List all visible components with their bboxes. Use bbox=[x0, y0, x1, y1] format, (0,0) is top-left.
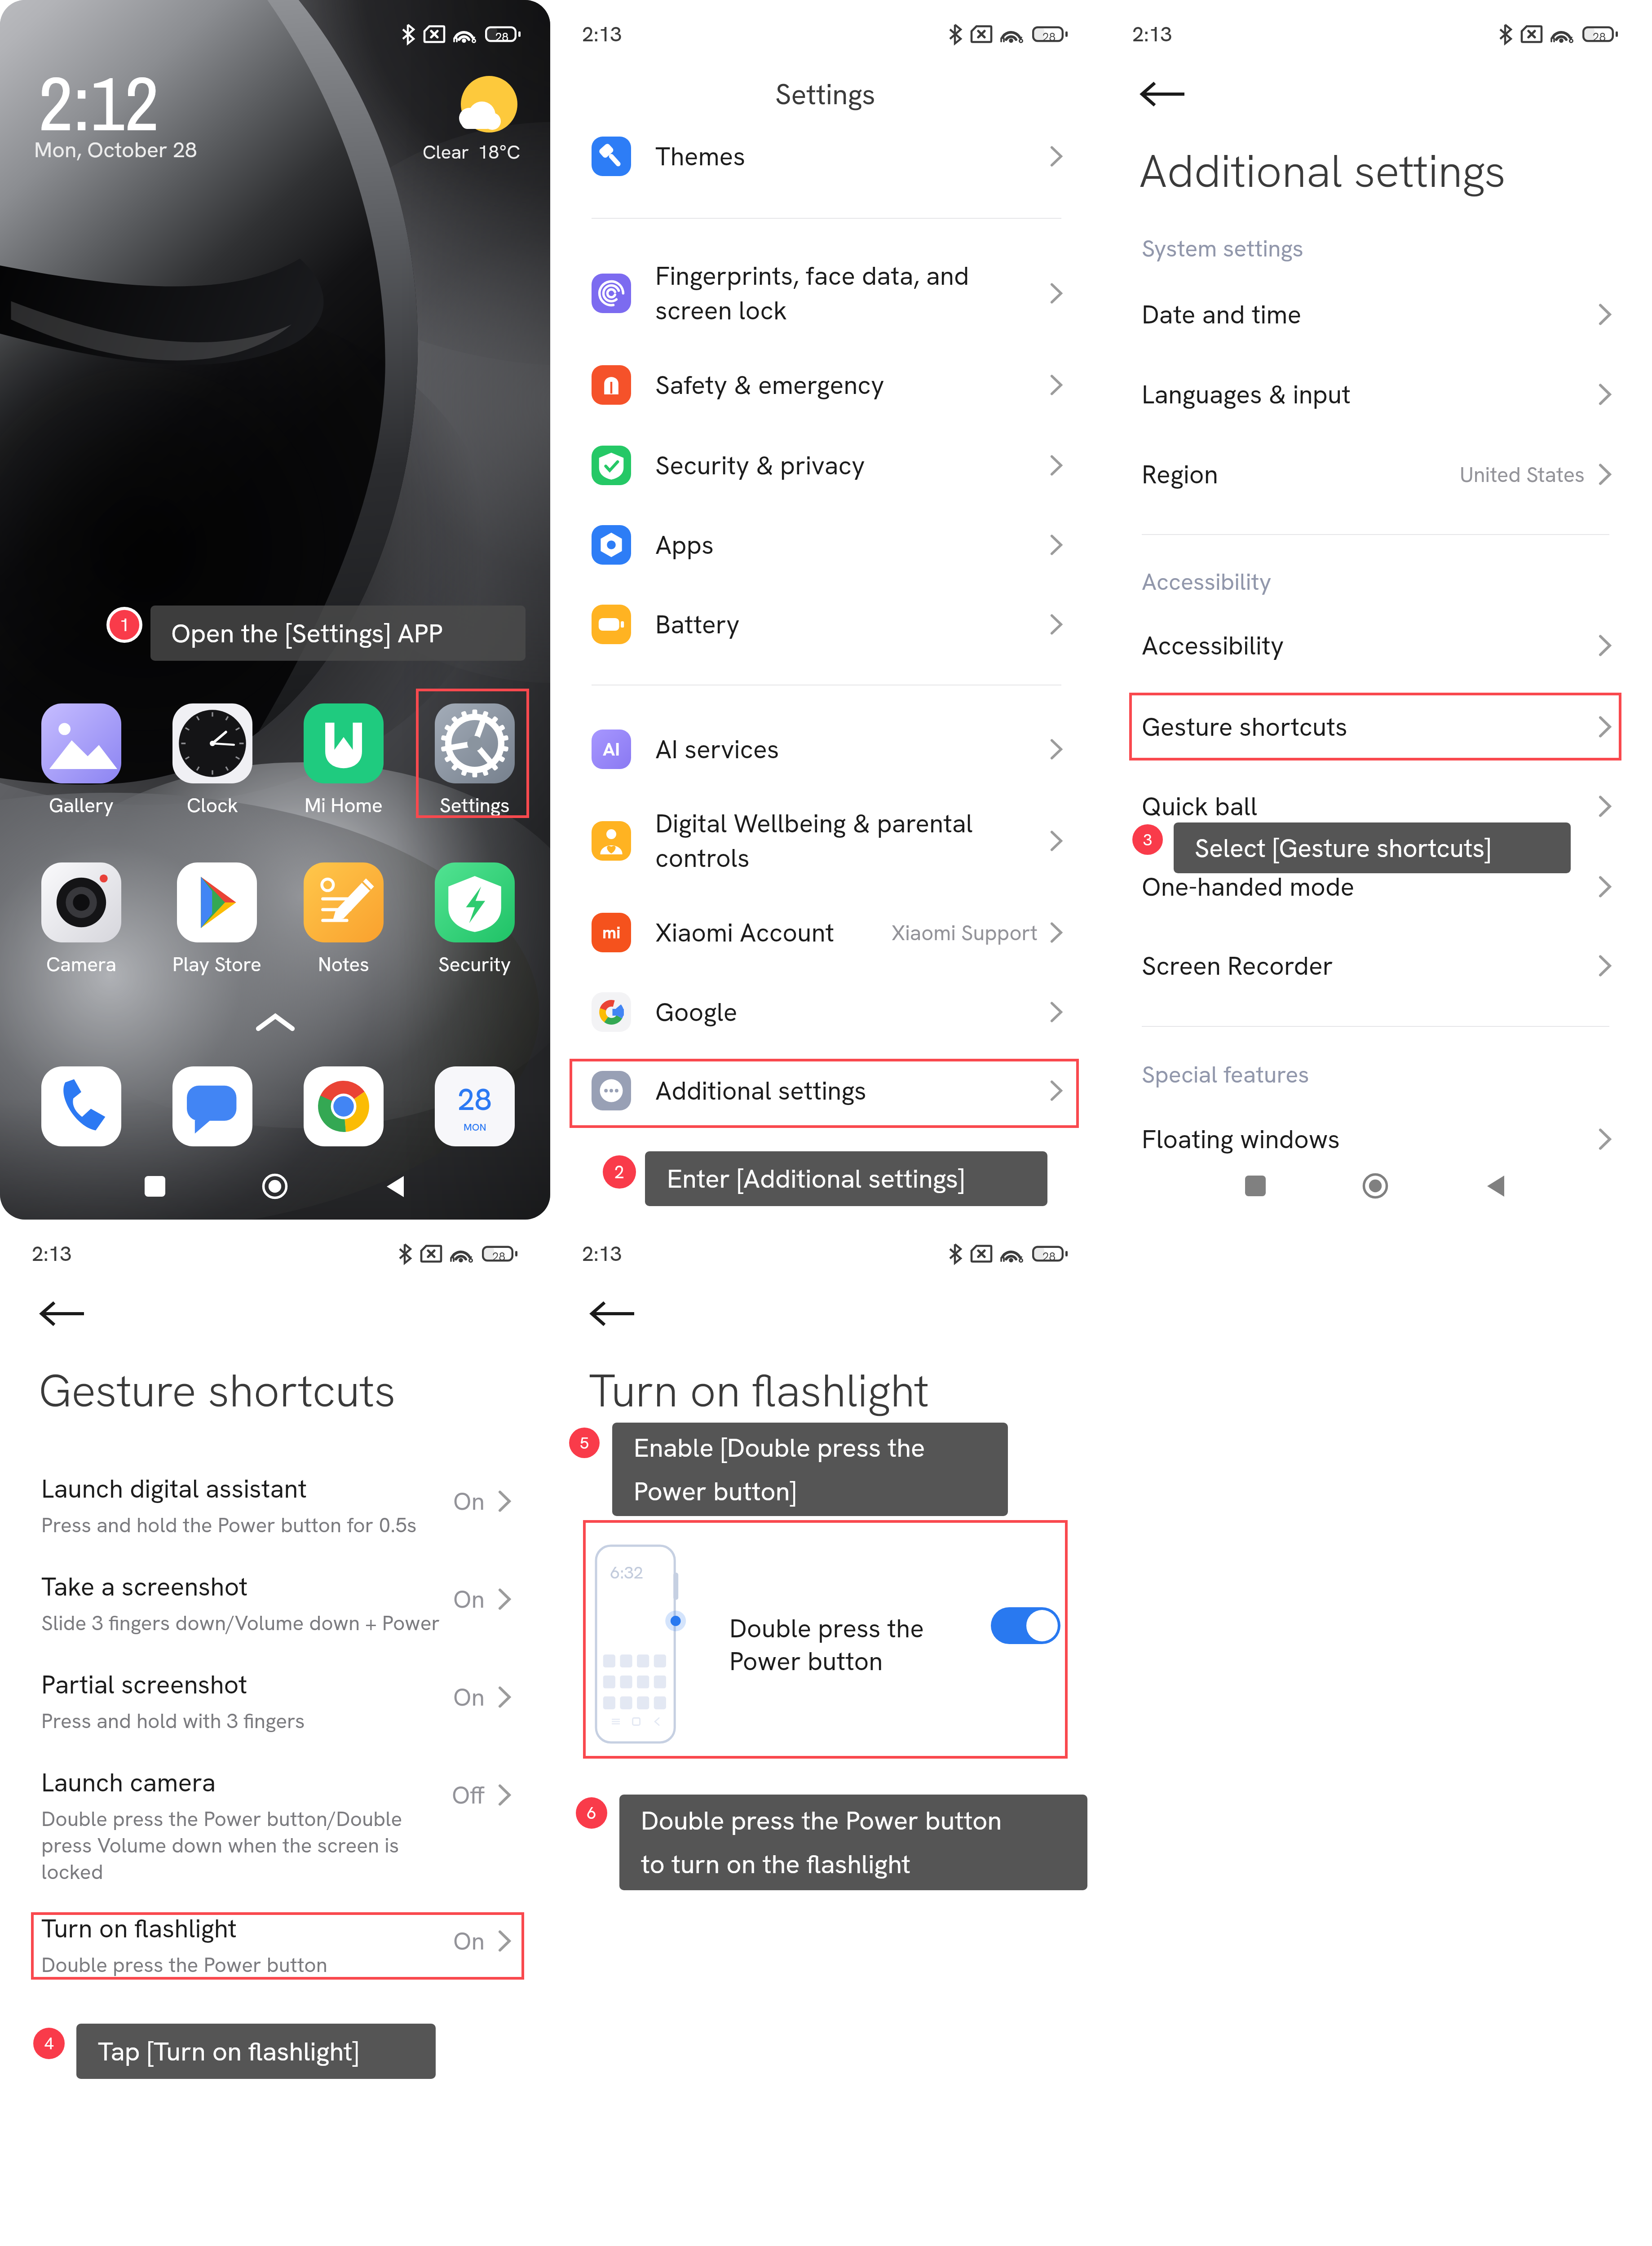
button[interactable]: Partial screenshot bbox=[0, 1668, 550, 1744]
button[interactable]: Settings bbox=[435, 703, 515, 818]
button[interactable]: Back bbox=[1472, 1162, 1519, 1210]
button[interactable]: Recents bbox=[1232, 1162, 1279, 1210]
button[interactable]: Back bbox=[371, 1163, 419, 1210]
staticText: One-handed mode bbox=[1142, 870, 1355, 903]
staticText: 1 bbox=[119, 613, 130, 637]
staticText: Accessibility bbox=[1142, 566, 1272, 597]
button[interactable]: Turn on flashlight bbox=[0, 1912, 550, 1988]
staticText: Play Store bbox=[172, 951, 261, 977]
button[interactable]: Notes bbox=[304, 862, 384, 977]
button[interactable]: Safety & emergency bbox=[550, 345, 1100, 425]
staticText: Xiaomi Support bbox=[892, 919, 1038, 946]
button[interactable]: Tap [Turn on flashlight] bbox=[76, 2024, 436, 2079]
button[interactable]: Fingerprints, face data, and screen lock bbox=[550, 253, 1100, 334]
button[interactable]: mi bbox=[550, 892, 1100, 973]
button[interactable]: Battery bbox=[550, 584, 1100, 665]
button[interactable]: Digital Wellbeing & parental controls bbox=[550, 800, 1100, 881]
staticText: On bbox=[453, 1681, 485, 1713]
button[interactable]: Screen Recorder bbox=[1100, 932, 1651, 999]
staticText: 28 bbox=[492, 1249, 506, 1264]
button[interactable]: Launch digital assistant bbox=[0, 1472, 550, 1548]
button[interactable]: Quick ball bbox=[1100, 773, 1651, 840]
button[interactable]: AI bbox=[550, 709, 1100, 790]
staticText: Google bbox=[655, 995, 738, 1029]
staticText: 3 bbox=[1143, 829, 1152, 850]
button[interactable]: Back bbox=[29, 1286, 95, 1341]
button[interactable]: Chrome bbox=[304, 1066, 384, 1146]
staticText: Double press the Power button/Double pre… bbox=[41, 1805, 402, 1885]
staticText: 6 bbox=[587, 1802, 596, 1824]
staticText: mi bbox=[602, 922, 621, 943]
button[interactable]: Camera bbox=[41, 862, 121, 977]
staticText: Security & privacy bbox=[655, 449, 865, 482]
staticText: Clear bbox=[423, 140, 469, 164]
staticText: Special features bbox=[1142, 1059, 1309, 1090]
staticText: Additional settings bbox=[1139, 141, 1506, 201]
button[interactable]: Home bbox=[251, 1163, 299, 1210]
button[interactable]: Gallery bbox=[41, 703, 121, 818]
button[interactable]: Date and time bbox=[1100, 281, 1651, 348]
staticText: Xiaomi Account bbox=[655, 916, 835, 949]
staticText: 2:13 bbox=[1132, 21, 1172, 48]
button[interactable]: Toggle double press the Power button bbox=[991, 1607, 1060, 1644]
staticText: Screen Recorder bbox=[1142, 949, 1333, 982]
staticText: Press and hold with 3 fingers bbox=[41, 1707, 305, 1734]
button[interactable]: Enable [Double press the Power button] bbox=[612, 1423, 1008, 1516]
staticText: 2:13 bbox=[582, 21, 622, 48]
button[interactable]: Mi Home bbox=[304, 703, 384, 818]
staticText: 18°C bbox=[478, 140, 521, 164]
button[interactable]: Apps bbox=[550, 504, 1100, 585]
button[interactable]: Recents bbox=[131, 1163, 179, 1210]
staticText: Languages & input bbox=[1142, 378, 1351, 411]
staticText: Accessibility bbox=[1142, 629, 1284, 662]
staticText: Gallery bbox=[49, 792, 114, 818]
staticText: Partial screenshot bbox=[41, 1668, 247, 1701]
button[interactable]: Enter [Additional settings] bbox=[645, 1151, 1047, 1206]
staticText: Off bbox=[452, 1779, 485, 1811]
button[interactable]: Additional settings bbox=[550, 1050, 1100, 1131]
staticText: Additional settings bbox=[655, 1074, 866, 1107]
staticText: Enter [Additional settings] bbox=[667, 1162, 965, 1196]
button[interactable]: Region bbox=[1100, 441, 1651, 508]
staticText: United States bbox=[1460, 461, 1585, 488]
staticText: Apps bbox=[655, 528, 714, 561]
staticText: Mon, October 28 bbox=[34, 136, 197, 164]
button[interactable]: Gesture shortcuts bbox=[1100, 693, 1651, 760]
staticText: Gesture shortcuts bbox=[39, 1361, 396, 1420]
button[interactable]: Home bbox=[1352, 1162, 1399, 1210]
button[interactable]: Security & privacy bbox=[550, 425, 1100, 506]
staticText: Safety & emergency bbox=[655, 368, 884, 402]
staticText: MON bbox=[464, 1121, 486, 1134]
button[interactable]: Messages bbox=[172, 1066, 252, 1146]
button[interactable]: Play Store bbox=[172, 862, 261, 977]
staticText: 5 bbox=[580, 1432, 589, 1454]
button[interactable]: Themes bbox=[550, 116, 1100, 197]
button[interactable]: Accessibility bbox=[1100, 612, 1651, 679]
button[interactable]: Languages & input bbox=[1100, 361, 1651, 428]
button[interactable]: 6:32 bbox=[583, 1520, 1068, 1759]
staticText: Security bbox=[438, 951, 511, 977]
button[interactable]: Google bbox=[550, 972, 1100, 1052]
button[interactable]: Phone bbox=[41, 1066, 121, 1146]
button[interactable]: One-handed mode bbox=[1100, 853, 1651, 920]
button[interactable]: Open the [Settings] APP bbox=[150, 606, 526, 661]
button[interactable]: Launch camera bbox=[0, 1766, 550, 1896]
staticText: 28 bbox=[1042, 29, 1056, 44]
staticText: Tap [Turn on flashlight] bbox=[98, 2034, 359, 2069]
button[interactable]: Security bbox=[435, 862, 515, 977]
staticText: Enable [Double press the Power button] bbox=[634, 1431, 925, 1508]
staticText: Gesture shortcuts bbox=[1142, 710, 1347, 743]
button[interactable]: Select [Gesture shortcuts] bbox=[1174, 822, 1571, 873]
button[interactable]: Back bbox=[579, 1286, 645, 1341]
button[interactable]: Take a screenshot bbox=[0, 1570, 550, 1646]
button[interactable]: Clock bbox=[172, 703, 252, 818]
staticText: 6:32 bbox=[610, 1561, 644, 1584]
staticText: Turn on flashlight bbox=[589, 1361, 929, 1420]
button[interactable]: Double press the Power button to turn on… bbox=[619, 1795, 1087, 1890]
button[interactable]: Floating windows bbox=[1100, 1105, 1651, 1173]
staticText: Quick ball bbox=[1142, 790, 1258, 823]
button[interactable]: Back bbox=[1129, 66, 1195, 121]
button[interactable]: Calendar bbox=[435, 1066, 515, 1146]
staticText: Mi Home bbox=[305, 792, 383, 818]
staticText: Double press the Power button bbox=[41, 1951, 328, 1978]
